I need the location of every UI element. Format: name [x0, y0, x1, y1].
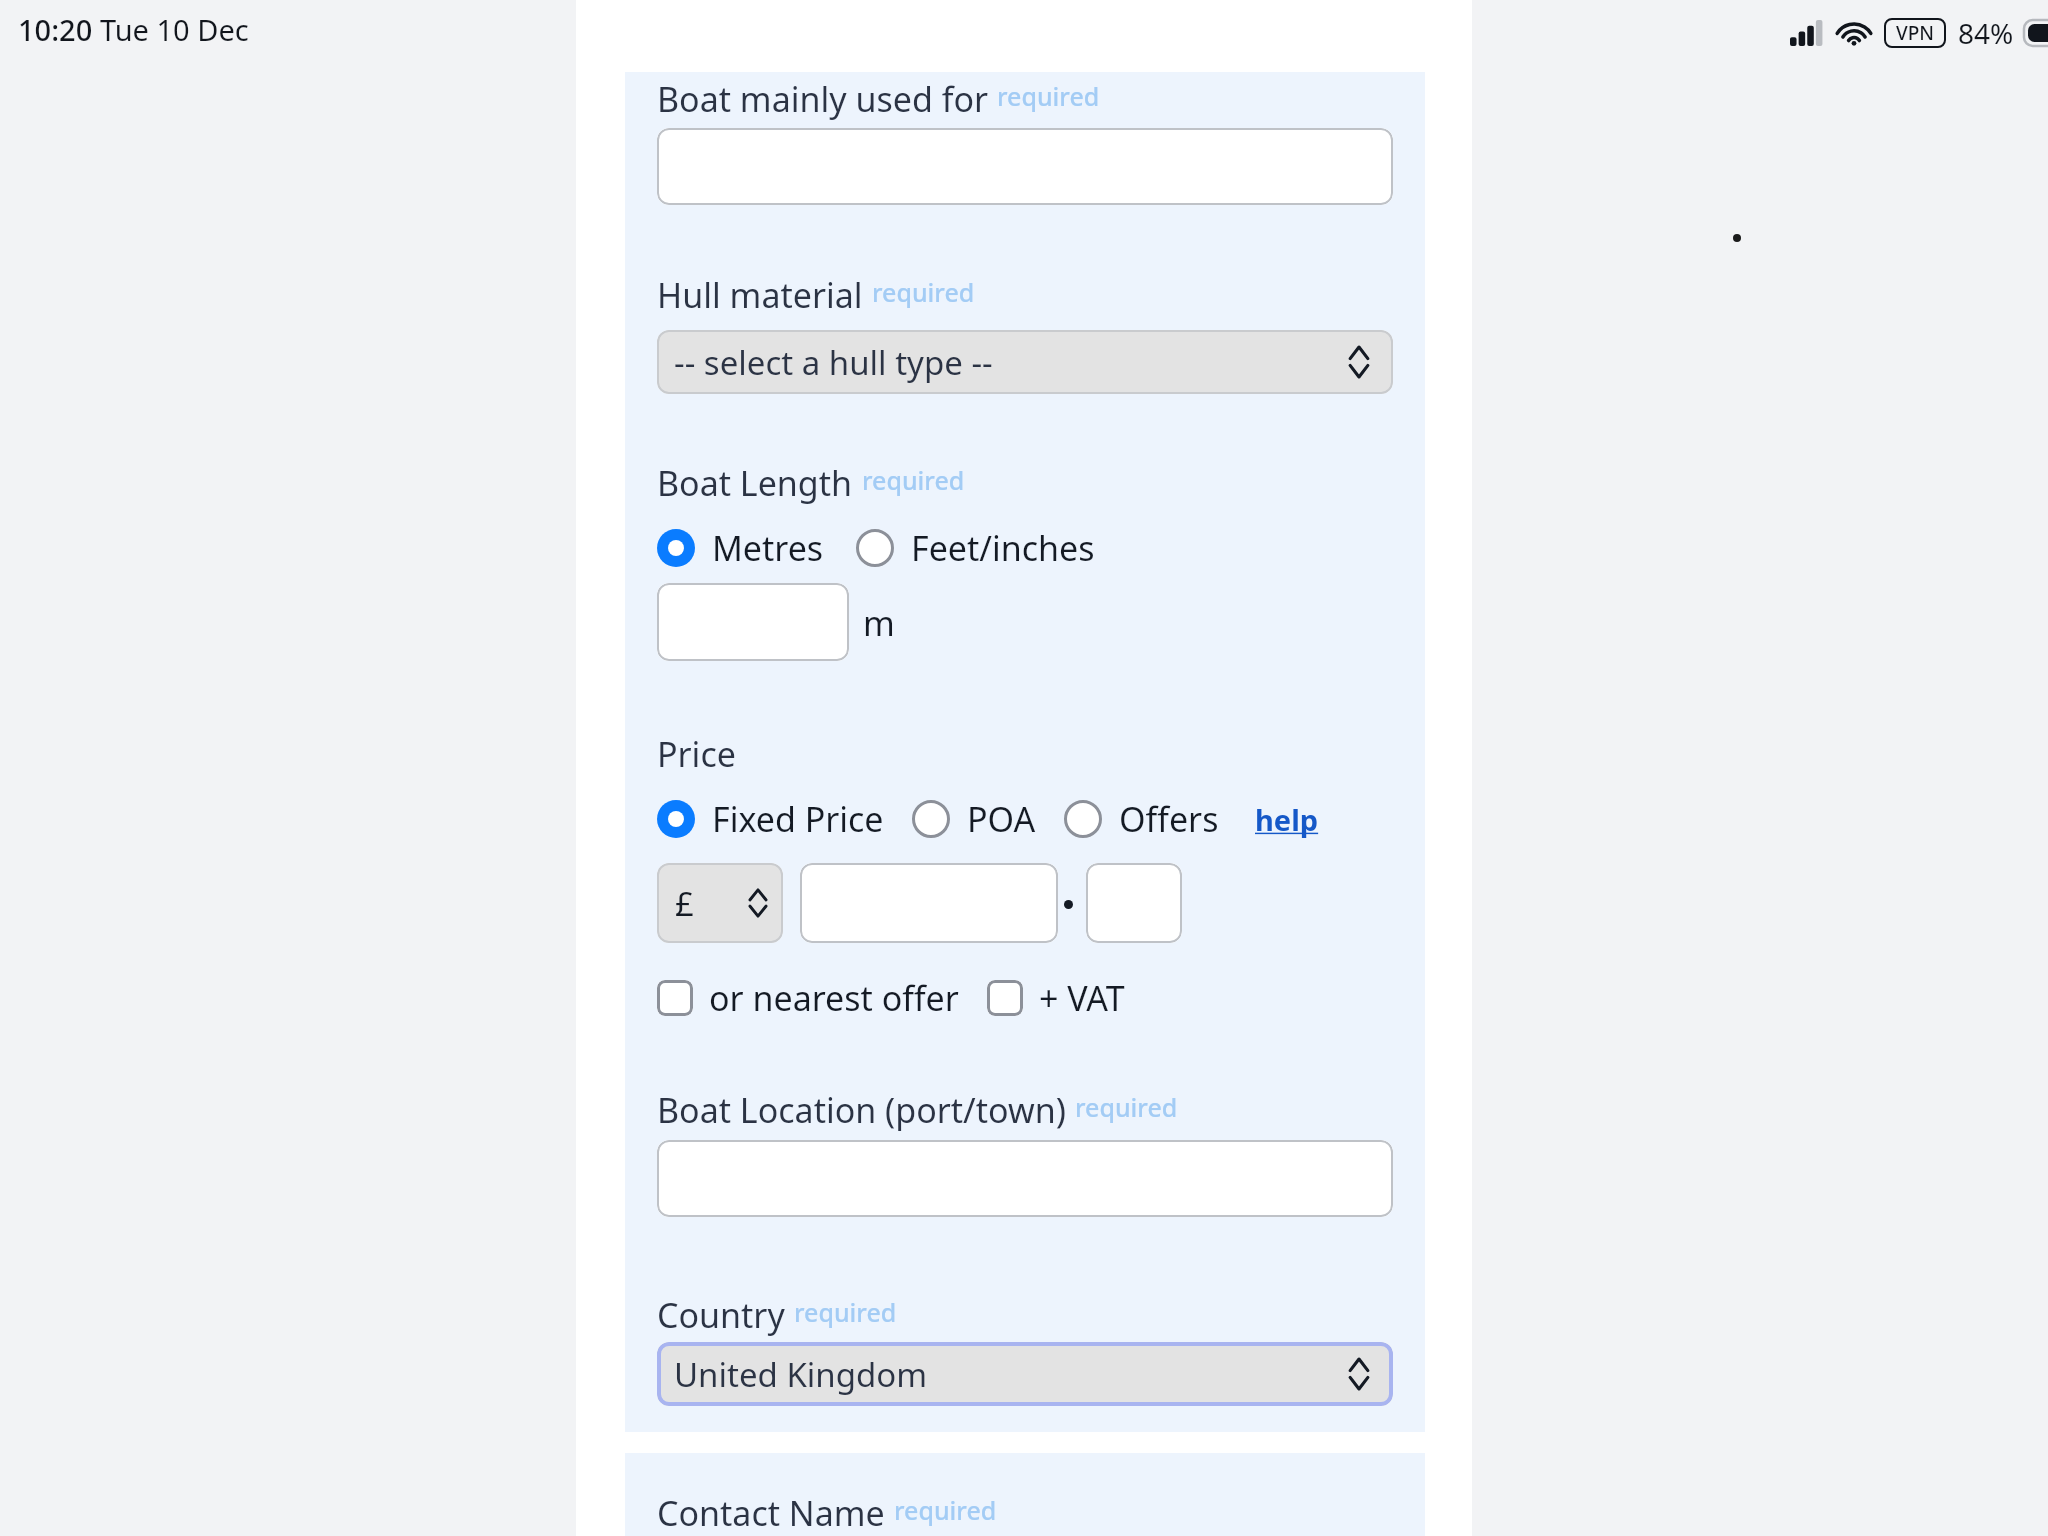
- staticText: required: [872, 275, 975, 309]
- button[interactable]: [657, 583, 849, 661]
- staticText: required: [894, 1493, 997, 1527]
- staticText: POA: [967, 796, 1036, 842]
- staticText: or nearest offer: [709, 975, 959, 1021]
- staticText: £: [675, 881, 694, 926]
- staticText: Country: [657, 1292, 785, 1338]
- button[interactable]: [657, 1140, 1393, 1217]
- staticText: required: [794, 1295, 897, 1329]
- staticText: Metres: [712, 525, 824, 571]
- button[interactable]: Offers: [1064, 796, 1219, 842]
- staticText: -- select a hull type --: [674, 340, 993, 385]
- staticText: Contact Name: [657, 1490, 885, 1536]
- staticText: Boat mainly used for: [657, 76, 988, 122]
- staticText: VPN: [1896, 20, 1935, 46]
- staticText: Hull material: [657, 272, 863, 318]
- staticText: Fixed Price: [712, 796, 884, 842]
- button[interactable]: -- select a hull type --: [657, 330, 1393, 394]
- staticText: m: [863, 600, 895, 646]
- staticText: Boat Length: [657, 460, 853, 506]
- button[interactable]: Feet/inches: [856, 525, 1095, 571]
- staticText: Boat Location (port/town): [657, 1087, 1066, 1133]
- button[interactable]: Fixed Price: [657, 796, 884, 842]
- staticText: Price: [657, 731, 736, 777]
- button[interactable]: United Kingdom: [657, 1342, 1393, 1406]
- button[interactable]: [657, 128, 1393, 205]
- staticText: Feet/inches: [911, 525, 1095, 571]
- button[interactable]: Metres: [657, 525, 824, 571]
- staticText: United Kingdom: [674, 1352, 928, 1397]
- button[interactable]: or nearest offer: [657, 975, 959, 1021]
- staticText: required: [862, 463, 965, 497]
- staticText: 10:20: [18, 10, 93, 49]
- button[interactable]: + VAT: [987, 975, 1125, 1021]
- staticText: required: [997, 79, 1100, 113]
- button[interactable]: £: [657, 863, 783, 943]
- button[interactable]: help: [1255, 800, 1319, 839]
- button[interactable]: [1086, 863, 1182, 943]
- staticText: Offers: [1119, 796, 1219, 842]
- staticText: Tue 10 Dec: [100, 10, 249, 49]
- button[interactable]: POA: [912, 796, 1036, 842]
- staticText: + VAT: [1039, 975, 1125, 1021]
- staticText: help: [1255, 800, 1319, 839]
- button[interactable]: [800, 863, 1058, 943]
- staticText: required: [1075, 1090, 1178, 1124]
- staticText: 84%: [1958, 14, 2014, 52]
